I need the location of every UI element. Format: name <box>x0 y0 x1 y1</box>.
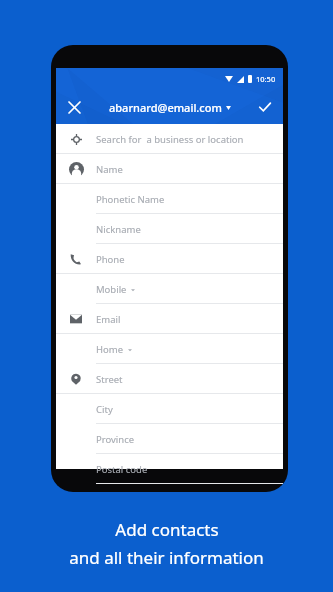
staticText: City <box>96 403 113 416</box>
button[interactable]: abarnard@email.com <box>105 96 235 119</box>
button[interactable]: Home <box>56 334 283 364</box>
button[interactable]: Nickname <box>56 214 283 244</box>
button[interactable]: Phonetic Name <box>56 184 283 214</box>
staticText: Phone <box>96 253 125 266</box>
staticText: 10:50 <box>256 74 276 84</box>
button[interactable]: City <box>56 394 283 424</box>
button[interactable]: Email <box>56 304 283 334</box>
button[interactable]: Street <box>56 364 283 394</box>
staticText: Mobile <box>96 283 127 296</box>
staticText: Add contacts <box>115 518 219 541</box>
button[interactable]: Mobile <box>56 274 283 304</box>
button[interactable]: Close <box>56 90 92 124</box>
staticText: Nickname <box>96 223 141 236</box>
staticText: Email <box>96 313 121 326</box>
staticText: Phonetic Name <box>96 193 165 206</box>
staticText: Street <box>96 373 123 386</box>
button[interactable]: Name <box>56 154 283 184</box>
button[interactable]: Phone <box>56 244 283 274</box>
staticText: Home <box>96 343 124 356</box>
staticText: abarnard@email.com <box>109 100 222 115</box>
staticText: Search for a business or location <box>96 133 244 146</box>
staticText: Name <box>96 163 123 176</box>
button[interactable]: Province <box>56 424 283 454</box>
button[interactable]: Search for a business or location <box>56 124 283 154</box>
button[interactable]: Save <box>247 90 283 124</box>
staticText: Postal code <box>96 463 148 476</box>
staticText: and all their information <box>69 546 264 569</box>
button[interactable]: Postal code <box>56 454 283 484</box>
staticText: Province <box>96 433 135 446</box>
